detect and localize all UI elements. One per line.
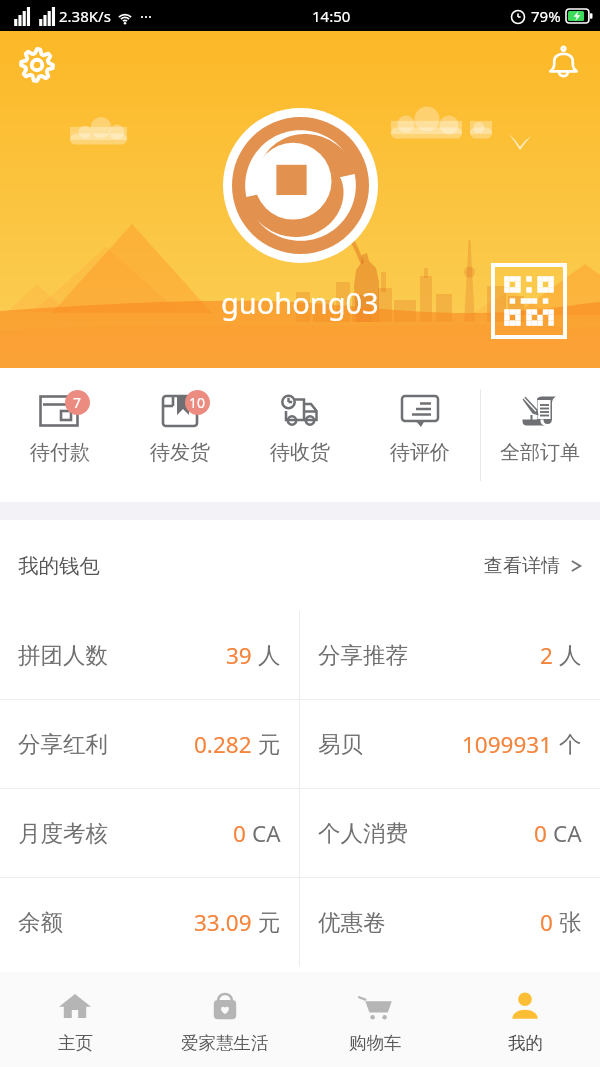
button[interactable]: 主页 <box>0 972 150 1067</box>
staticText: 7 <box>73 393 82 412</box>
staticText: 待评价 <box>390 440 450 465</box>
button[interactable]: 7 <box>0 368 120 502</box>
staticText: ··· <box>140 6 153 26</box>
staticText: 分享红利 <box>18 730 108 758</box>
button[interactable]: 购物车 <box>300 972 450 1067</box>
button[interactable]: 分享推荐 <box>300 611 600 699</box>
staticText: 0.282 <box>194 729 252 760</box>
button[interactable]: 拼团人数 <box>0 611 299 699</box>
button[interactable]: 分享红利 <box>0 700 299 788</box>
staticText: 待收货 <box>270 440 330 465</box>
button[interactable]: 月度考核 <box>0 789 299 877</box>
staticText: 张 <box>559 908 582 936</box>
button[interactable]: 我的 <box>450 972 600 1067</box>
button[interactable]: 爱家慧生活 <box>150 972 300 1067</box>
staticText: 我的钱包 <box>18 553 100 579</box>
button[interactable]: QR code <box>493 265 565 337</box>
staticText: CA <box>252 818 281 849</box>
button[interactable]: Notifications <box>535 33 591 89</box>
staticText: 易贝 <box>318 730 363 758</box>
staticText: 1099931 <box>462 729 553 760</box>
button[interactable]: Avatar <box>223 108 378 263</box>
staticText: CA <box>553 818 582 849</box>
staticText: 元 <box>258 730 281 758</box>
button[interactable]: 待收货 <box>240 368 360 502</box>
staticText: 爱家慧生活 <box>181 1032 269 1054</box>
staticText: 元 <box>258 908 281 936</box>
staticText: 个 <box>559 730 582 758</box>
button[interactable]: 易贝 <box>300 700 600 788</box>
staticText: 拼团人数 <box>18 641 108 669</box>
staticText: 人 <box>559 641 582 669</box>
staticText: 查看详情 <box>484 554 560 578</box>
button[interactable]: 优惠卷 <box>300 878 600 966</box>
staticText: 2.38K/s <box>59 6 111 26</box>
staticText: 33.09 <box>194 907 252 938</box>
staticText: 全部订单 <box>500 440 580 465</box>
button[interactable]: 10 <box>120 368 240 502</box>
staticText: 0 <box>540 907 553 938</box>
staticText: 月度考核 <box>18 819 108 847</box>
staticText: 购物车 <box>349 1032 402 1054</box>
staticText: 39 <box>226 640 252 671</box>
staticText: 14:50 <box>312 6 351 26</box>
button[interactable]: 个人消费 <box>300 789 600 877</box>
staticText: guohong03 <box>221 283 379 322</box>
staticText: 10 <box>189 393 206 412</box>
staticText: 0 <box>534 818 547 849</box>
staticText: 优惠卷 <box>318 908 386 936</box>
staticText: 79% <box>531 6 561 26</box>
button[interactable]: 我的钱包 <box>0 520 600 611</box>
staticText: 主页 <box>58 1032 93 1054</box>
staticText: 余额 <box>18 908 63 936</box>
staticText: 我的 <box>508 1032 543 1054</box>
staticText: 个人消费 <box>318 819 408 847</box>
staticText: 人 <box>258 641 281 669</box>
button[interactable]: 待评价 <box>360 368 480 502</box>
staticText: 2 <box>540 640 553 671</box>
staticText: 0 <box>233 818 246 849</box>
staticText: 分享推荐 <box>318 641 408 669</box>
button[interactable]: 余额 <box>0 878 299 966</box>
staticText: 待付款 <box>30 440 90 465</box>
button[interactable]: 全部订单 <box>480 368 600 502</box>
button[interactable]: Settings <box>9 37 65 93</box>
staticText: 待发货 <box>150 440 210 465</box>
